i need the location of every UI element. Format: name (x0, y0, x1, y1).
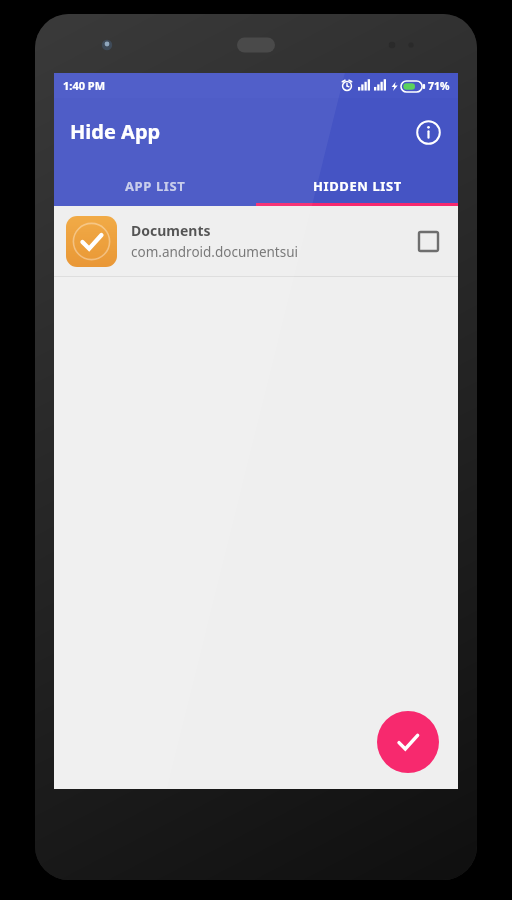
staticText: APP LIST (125, 177, 186, 195)
button[interactable]: HIDDEN LIST (256, 165, 458, 206)
button[interactable]: APP LIST (54, 165, 256, 206)
staticText: 71% (428, 79, 450, 93)
button[interactable]: Select Documents (410, 223, 446, 259)
button[interactable]: Info (408, 112, 448, 152)
staticText: HIDDEN LIST (313, 177, 402, 195)
staticText: 1:40 PM (63, 78, 106, 93)
staticText: Documents (131, 221, 211, 240)
staticText: Hide App (70, 118, 161, 145)
staticText: com.android.documentsui (131, 243, 299, 261)
button[interactable]: Documents (54, 206, 458, 276)
button[interactable]: Confirm (377, 711, 439, 773)
